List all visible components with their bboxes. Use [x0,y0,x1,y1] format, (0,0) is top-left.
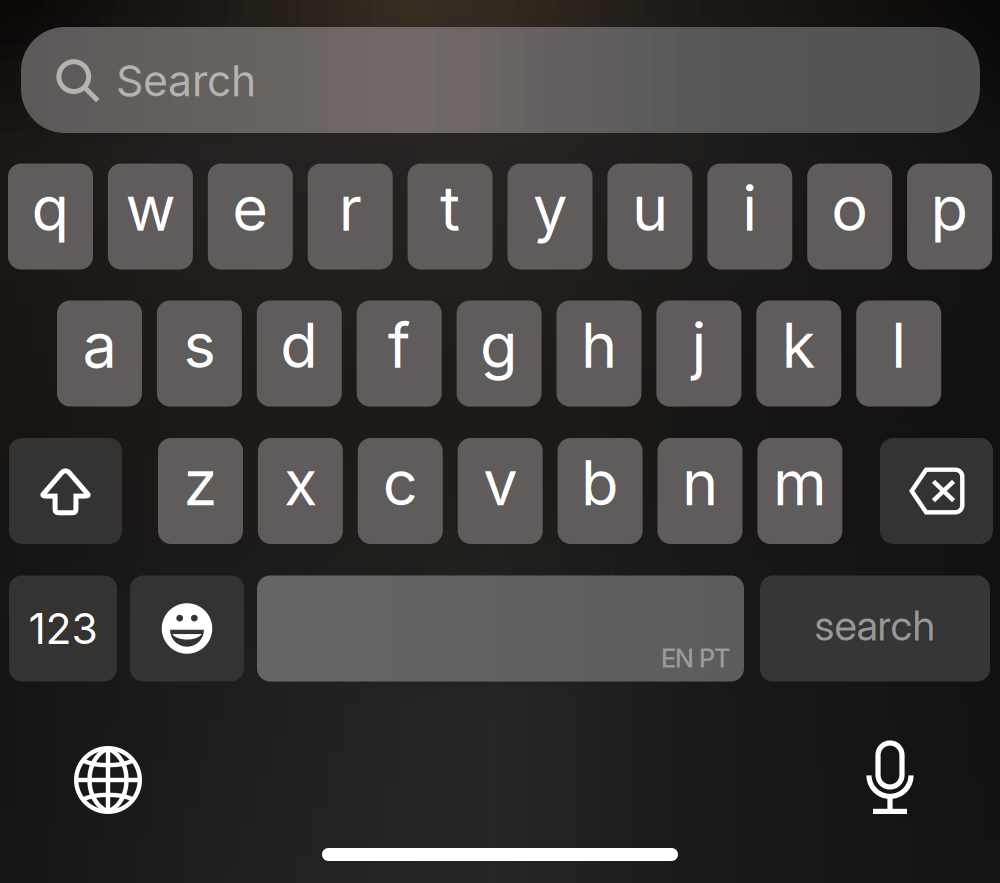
staticText: z [183,446,217,520]
staticText: d [280,308,318,383]
button[interactable]: g [457,300,542,406]
button[interactable]: 123 [9,575,117,681]
staticText: r [339,171,362,246]
button[interactable]: j [656,300,741,406]
staticText: f [388,308,411,383]
button[interactable]: u [607,163,692,269]
button[interactable]: search [760,575,990,681]
staticText: w [125,171,175,246]
button[interactable]: Search [21,27,980,133]
staticText: v [483,446,517,520]
staticText: 123 [28,603,97,654]
button[interactable]: h [556,300,641,406]
staticText: q [31,171,69,246]
button[interactable]: Emoji [130,575,244,681]
staticText: x [284,446,317,520]
staticText: b [581,446,619,520]
button[interactable]: f [357,300,442,406]
button[interactable]: n [657,438,742,544]
button[interactable]: r [308,163,393,269]
staticText: c [383,446,418,520]
button[interactable]: a [57,300,142,406]
button[interactable]: Dictation [866,738,914,814]
button[interactable]: Next keyboard [74,746,142,814]
button[interactable]: p [907,163,992,269]
staticText: search [814,600,935,650]
staticText: h [581,308,617,383]
staticText: i [742,171,757,246]
staticText: k [782,308,816,383]
button[interactable]: Shift [9,438,122,544]
button[interactable]: Space [257,575,744,681]
button[interactable]: b [558,438,643,544]
button[interactable]: m [757,438,842,544]
staticText: EN PT [661,643,730,673]
staticText: a [82,308,116,383]
button[interactable]: k [756,300,841,406]
staticText: p [931,171,969,246]
button[interactable]: x [258,438,343,544]
staticText: g [480,308,518,383]
staticText: n [682,446,718,520]
button[interactable]: o [807,163,892,269]
button[interactable]: c [358,438,443,544]
staticText: u [632,171,668,246]
button[interactable]: e [208,163,293,269]
staticText: o [831,171,868,246]
button[interactable]: y [507,163,592,269]
button[interactable]: l [856,300,941,406]
staticText: y [533,171,567,246]
staticText: m [773,446,827,520]
staticText: t [440,171,460,246]
button[interactable]: v [458,438,543,544]
button[interactable]: z [158,438,243,544]
button[interactable]: s [157,300,242,406]
button[interactable]: w [108,163,193,269]
button[interactable]: i [707,163,792,269]
button[interactable]: q [8,163,93,269]
staticText: j [691,308,706,383]
button[interactable]: Delete [880,438,993,544]
staticText: l [891,308,906,383]
button[interactable]: d [257,300,342,406]
staticText: Search [116,55,256,107]
staticText: e [232,171,268,246]
button[interactable]: t [408,163,493,269]
staticText: s [183,308,215,383]
